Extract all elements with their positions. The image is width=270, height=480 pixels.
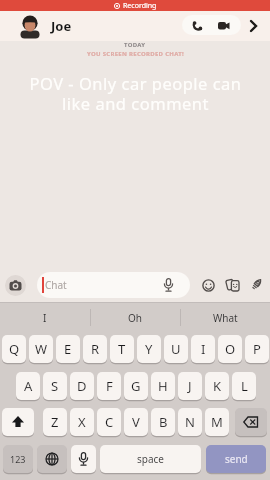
staticText: E <box>64 340 72 358</box>
button[interactable] <box>202 279 215 292</box>
button[interactable] <box>182 15 241 35</box>
button[interactable] <box>226 278 240 292</box>
button[interactable]: send <box>206 445 266 473</box>
staticText: N <box>185 413 195 431</box>
button[interactable]: Y <box>137 335 161 363</box>
button[interactable] <box>2 408 34 436</box>
button[interactable]: G <box>124 372 148 400</box>
staticText: G <box>131 377 141 395</box>
button[interactable] <box>5 275 26 296</box>
button[interactable]: X <box>70 408 94 436</box>
button[interactable]: O <box>218 335 242 363</box>
button[interactable]: 123 <box>3 445 33 473</box>
button[interactable]: I <box>191 335 215 363</box>
staticText: POV - Only car people can like and comme… <box>29 72 242 115</box>
button[interactable]: K <box>205 372 229 400</box>
button[interactable] <box>18 14 42 38</box>
staticText: Oh <box>128 311 142 325</box>
staticText: V <box>132 413 140 431</box>
button[interactable]: T <box>110 335 134 363</box>
staticText: H <box>158 377 168 395</box>
button[interactable]: P <box>245 335 269 363</box>
button[interactable]: E <box>56 335 80 363</box>
staticText: J <box>188 377 192 395</box>
button[interactable]: U <box>164 335 188 363</box>
button[interactable]: Recording <box>0 0 270 11</box>
button[interactable] <box>250 278 264 292</box>
button[interactable]: L <box>232 372 256 400</box>
button[interactable]: R <box>83 335 107 363</box>
button[interactable] <box>37 445 67 473</box>
staticText: Chat <box>45 278 67 292</box>
button[interactable]: M <box>205 408 229 436</box>
staticText: YOU SCREEN RECORDED CHAT! <box>87 50 184 58</box>
button[interactable]: Oh <box>90 305 180 330</box>
staticText: K <box>213 377 222 395</box>
button[interactable]: Q <box>2 335 26 363</box>
button[interactable]: J <box>178 372 202 400</box>
staticText: M <box>211 413 223 431</box>
staticText: send <box>225 452 248 466</box>
staticText: O <box>225 340 236 358</box>
staticText: I <box>43 311 47 325</box>
staticText: Z <box>51 413 59 431</box>
staticText: F <box>106 377 113 395</box>
button[interactable]: D <box>70 372 94 400</box>
button[interactable]: Z <box>43 408 67 436</box>
staticText: U <box>171 340 181 358</box>
staticText: P <box>253 340 261 358</box>
staticText: I <box>201 340 206 358</box>
staticText: 123 <box>10 453 26 465</box>
staticText: Q <box>9 340 20 358</box>
button[interactable]: A <box>16 372 40 400</box>
staticText: Y <box>145 340 153 358</box>
button[interactable] <box>249 20 259 32</box>
staticText: L <box>241 377 248 395</box>
button[interactable]: F <box>97 372 121 400</box>
button[interactable]: C <box>97 408 121 436</box>
staticText: A <box>24 377 33 395</box>
staticText: What <box>213 311 238 325</box>
button[interactable]: W <box>29 335 53 363</box>
staticText: Recording <box>123 1 157 11</box>
staticText: D <box>77 377 87 395</box>
button[interactable]: S <box>43 372 67 400</box>
staticText: Joe <box>51 17 72 35</box>
button[interactable]: N <box>178 408 202 436</box>
button[interactable]: What <box>180 305 270 330</box>
staticText: T <box>118 340 126 358</box>
button[interactable] <box>71 445 96 473</box>
staticText: R <box>91 340 100 358</box>
staticText: X <box>78 413 86 431</box>
staticText: B <box>159 413 168 431</box>
button[interactable]: Chat <box>37 272 190 298</box>
button[interactable]: H <box>151 372 175 400</box>
staticText: space <box>137 452 164 466</box>
button[interactable]: V <box>124 408 148 436</box>
staticText: C <box>105 413 114 431</box>
staticText: TODAY <box>124 41 146 49</box>
button[interactable] <box>235 408 267 436</box>
button[interactable]: I <box>0 305 90 330</box>
staticText: W <box>35 340 48 358</box>
staticText: S <box>51 377 59 395</box>
button[interactable]: space <box>100 445 201 473</box>
button[interactable]: B <box>151 408 175 436</box>
